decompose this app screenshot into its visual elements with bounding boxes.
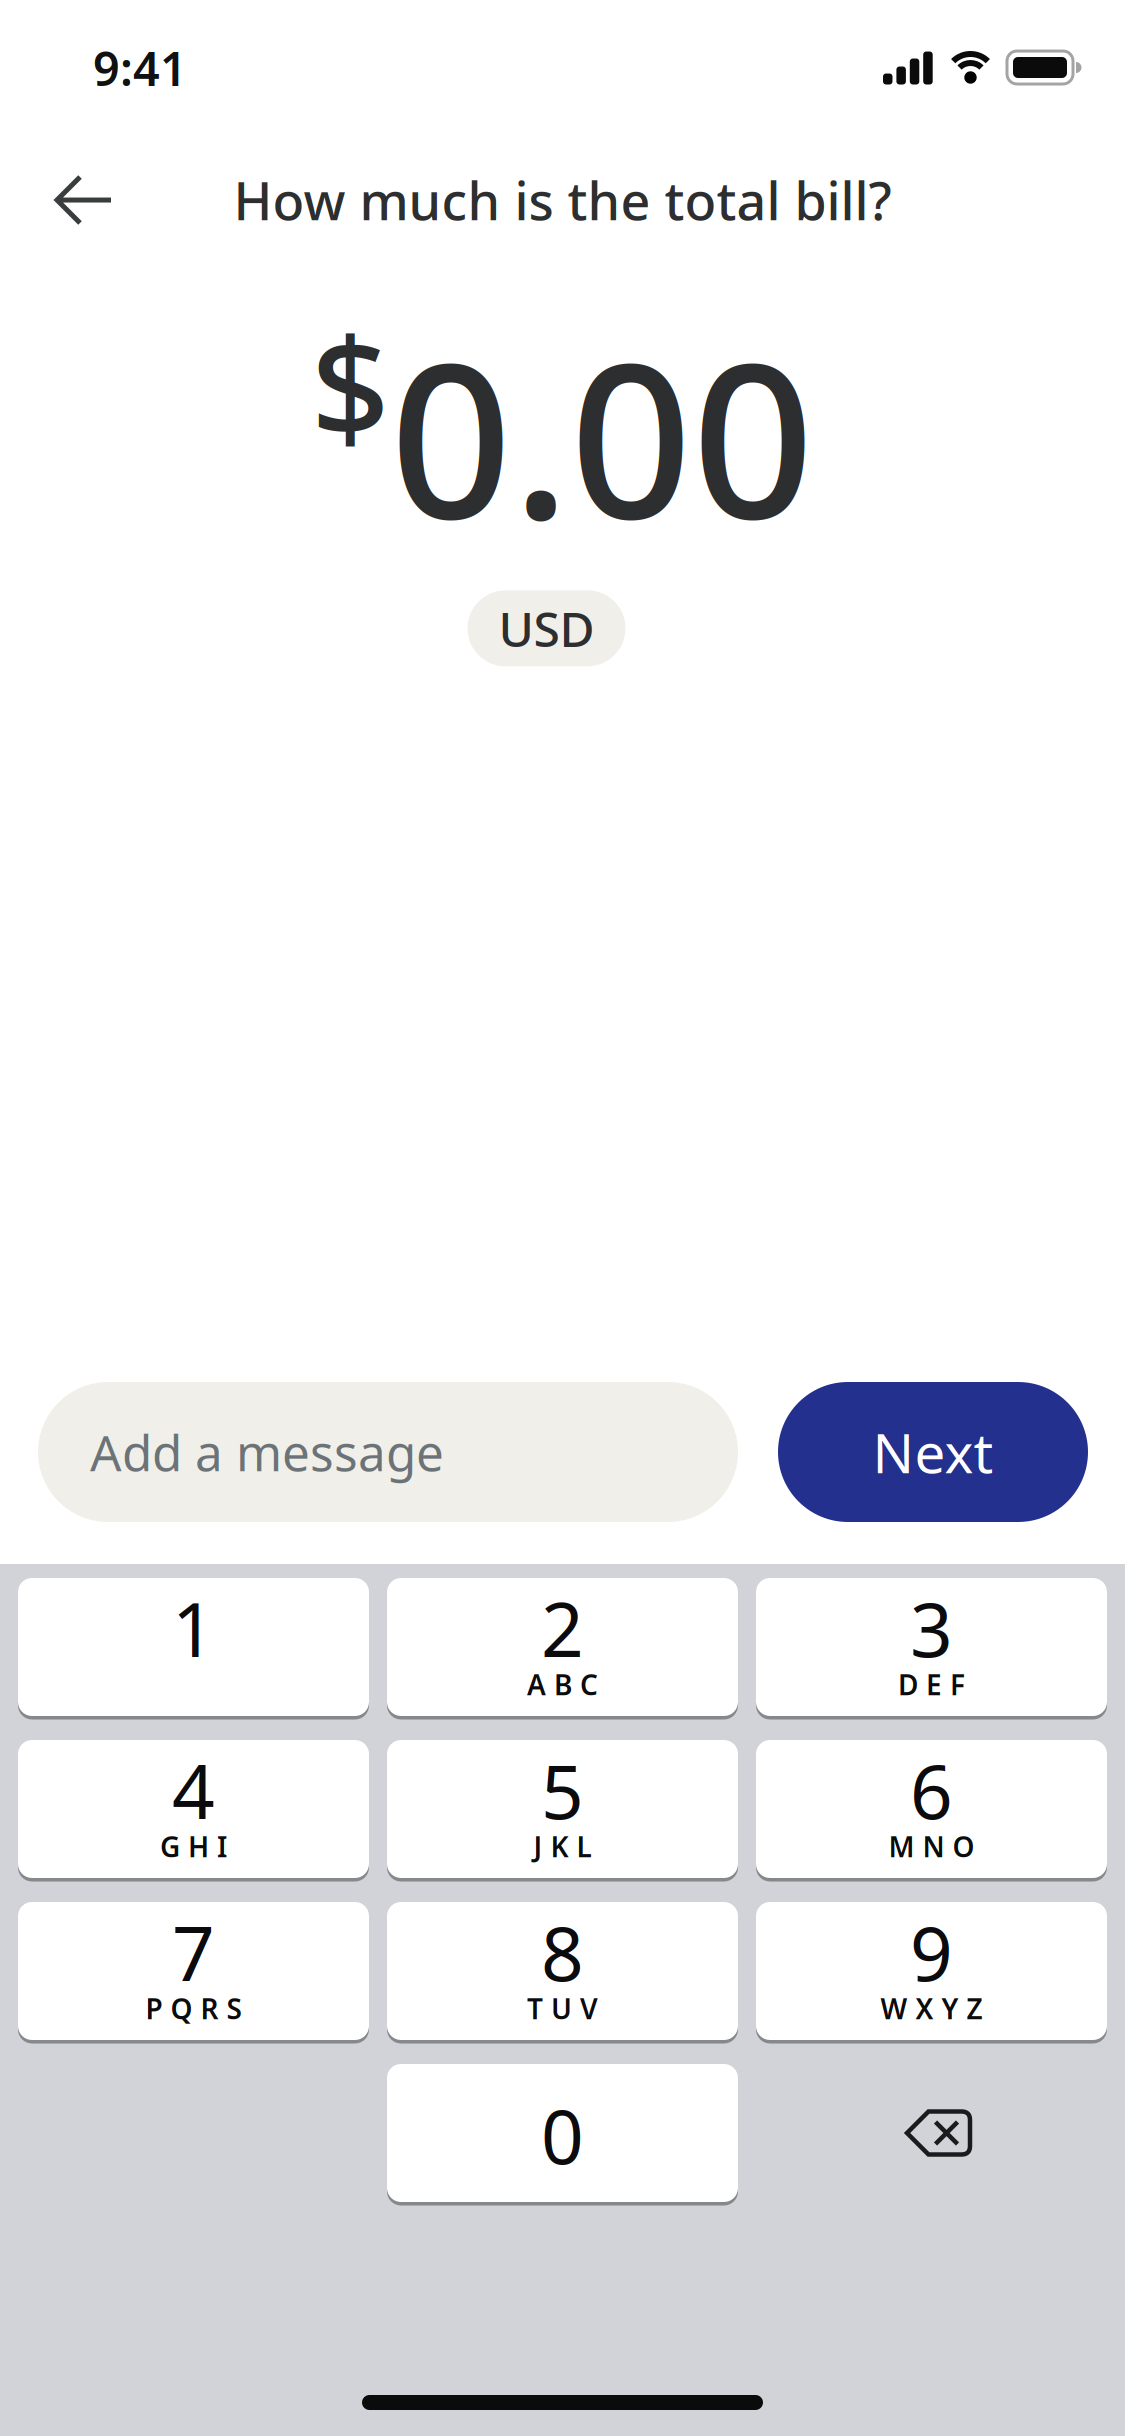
button[interactable]: Next [778, 1382, 1088, 1522]
staticText: 9:41 [93, 37, 187, 99]
staticText: JKL [533, 1828, 591, 1865]
staticText: GHI [160, 1828, 227, 1865]
staticText: $0.00 [311, 294, 814, 577]
staticText: ABC [527, 1666, 598, 1703]
staticText: 5 [541, 1740, 584, 1840]
staticText: 4 [172, 1740, 215, 1840]
button[interactable]: 9 [756, 1902, 1107, 2040]
staticText: 8 [541, 1902, 584, 2002]
staticText: How much is the total bill? [233, 165, 891, 235]
button[interactable]: 1 [18, 1578, 369, 1716]
staticText: WXYZ [880, 1990, 982, 2027]
button[interactable]: 8 [387, 1902, 738, 2040]
staticText: 0 [541, 2085, 584, 2185]
staticText: 9 [910, 1902, 953, 2002]
staticText: 6 [910, 1740, 953, 1840]
staticText: 2 [541, 1578, 584, 1678]
button[interactable]: 0 [387, 2064, 738, 2202]
button[interactable]: Back [0, 154, 113, 246]
button[interactable]: 6 [756, 1740, 1107, 1878]
staticText: 7 [172, 1902, 215, 2002]
staticText: 1 [172, 1578, 215, 1678]
staticText: MNO [888, 1828, 974, 1865]
button[interactable]: Delete [756, 2064, 1107, 2202]
button[interactable]: 5 [387, 1740, 738, 1878]
staticText: Next [872, 1416, 993, 1488]
staticText: USD [498, 596, 594, 660]
staticText: PQRS [145, 1990, 241, 2027]
button[interactable]: 3 [756, 1578, 1107, 1716]
button[interactable]: Currency USD [467, 590, 625, 666]
button[interactable]: 2 [387, 1578, 738, 1716]
button[interactable]: 4 [18, 1740, 369, 1878]
staticText: TUV [527, 1990, 598, 2027]
button[interactable]: 7 [18, 1902, 369, 2040]
button[interactable]: Add a message [38, 1382, 738, 1522]
staticText: Add a message [90, 1419, 444, 1485]
staticText: DEF [898, 1666, 965, 1703]
staticText: 3 [910, 1578, 953, 1678]
